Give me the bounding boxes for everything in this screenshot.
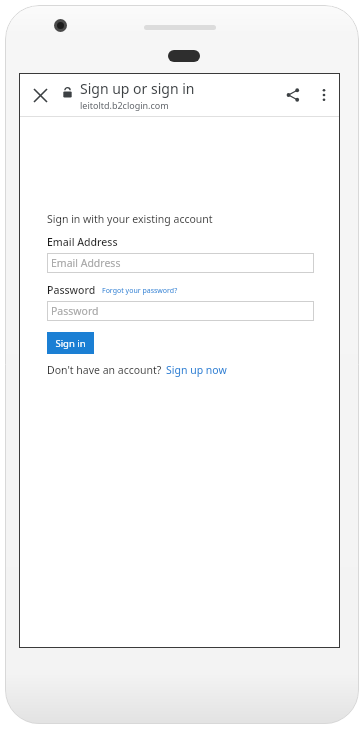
staticText: Forgot your password? bbox=[102, 286, 178, 296]
staticText: leitoltd.b2clogin.com bbox=[80, 99, 169, 111]
staticText: Email Address bbox=[47, 235, 118, 249]
staticText: Sign up now bbox=[166, 363, 227, 377]
staticText: Email Address bbox=[51, 256, 121, 270]
button[interactable]: Email Address bbox=[47, 253, 314, 273]
button[interactable]: Share bbox=[281, 83, 305, 107]
button[interactable]: Forgot your password? bbox=[102, 286, 178, 297]
button[interactable]: More options bbox=[312, 83, 336, 107]
button[interactable]: Sign in bbox=[47, 332, 94, 354]
staticText: Password bbox=[51, 304, 99, 318]
staticText: Sign in bbox=[55, 337, 86, 350]
button[interactable]: Password bbox=[47, 301, 314, 321]
staticText: Password bbox=[47, 283, 96, 297]
staticText: Sign up or sign in bbox=[80, 79, 195, 98]
button[interactable]: Sign up now bbox=[166, 363, 227, 377]
staticText: Sign in with your existing account bbox=[47, 212, 213, 226]
staticText: Don't have an account? bbox=[47, 363, 162, 377]
button[interactable]: Close bbox=[28, 83, 52, 107]
